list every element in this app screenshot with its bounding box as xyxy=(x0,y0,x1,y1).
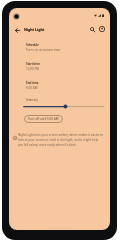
staticText: Turns on at custom time xyxy=(26,48,61,52)
button[interactable]: Schedule xyxy=(19,40,107,56)
staticText: End time xyxy=(26,81,39,85)
button[interactable]: Start time xyxy=(19,59,107,75)
button[interactable]: Intensity slider xyxy=(22,102,106,111)
staticText: Night Light xyxy=(24,27,45,32)
staticText: Night Light tints your screen amber, whi… xyxy=(18,133,104,137)
staticText: 6:00 AM xyxy=(26,86,38,90)
button[interactable]: Navigate up xyxy=(11,24,23,36)
staticText: Start time xyxy=(26,62,40,66)
staticText: Night Light xyxy=(24,27,45,32)
staticText: Schedule xyxy=(26,43,39,47)
staticText: you fall asleep more easily when it's da… xyxy=(18,143,77,147)
staticText: Turn off until 6:00 AM xyxy=(28,117,59,121)
button[interactable]: End time xyxy=(19,78,107,94)
staticText: Start time xyxy=(26,62,40,66)
button[interactable]: Turn off until 6:00 AM xyxy=(24,115,63,123)
staticText: look at your screen or read in dim light… xyxy=(18,138,99,142)
button[interactable]: Search xyxy=(86,23,98,35)
staticText: End time xyxy=(26,81,39,85)
button[interactable]: Help xyxy=(96,23,108,35)
staticText: Intensity xyxy=(26,98,38,102)
staticText: Schedule xyxy=(26,43,39,47)
staticText: 10:00 PM xyxy=(26,67,39,71)
